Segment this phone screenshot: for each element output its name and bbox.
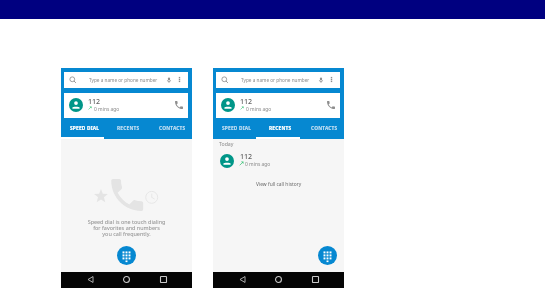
button[interactable]: 112	[64, 93, 188, 118]
staticText: 112	[88, 96, 101, 106]
button[interactable]: Home	[271, 273, 286, 288]
staticText: 0 mins ago	[94, 106, 120, 113]
button[interactable]: CONTACTS	[148, 118, 192, 139]
button[interactable]: Back	[83, 273, 98, 288]
button[interactable]: Recent apps	[156, 273, 171, 288]
button[interactable]: 112	[216, 93, 340, 118]
button[interactable]: Open dialpad	[117, 246, 136, 265]
staticText: Type a name or phone number	[241, 77, 310, 83]
staticText: Type a name or phone number	[89, 77, 158, 83]
staticText: 0 mins ago	[245, 161, 271, 168]
button[interactable]: RECENTS	[256, 118, 300, 139]
button[interactable]: Type a name or phone number	[216, 72, 340, 88]
staticText: Speed dial is one touch dialing for favo…	[61, 218, 192, 238]
staticText: 112	[240, 96, 253, 106]
staticText: Today	[219, 140, 234, 147]
staticText: RECENTS	[117, 125, 140, 132]
staticText: SPEED DIAL	[70, 125, 100, 132]
button[interactable]: Back	[235, 273, 250, 288]
staticText: View full call history	[256, 181, 302, 188]
button[interactable]: SPEED DIAL	[61, 118, 104, 139]
button[interactable]: RECENTS	[104, 118, 148, 139]
button[interactable]: Call	[323, 97, 339, 113]
staticText: 0 mins ago	[246, 106, 272, 113]
button[interactable]: View full call history	[213, 180, 344, 189]
button[interactable]: 112	[213, 151, 344, 171]
button[interactable]: Home	[119, 273, 134, 288]
button[interactable]: SPEED DIAL	[213, 118, 256, 139]
staticText: SPEED DIAL	[222, 125, 252, 132]
button[interactable]: Type a name or phone number	[64, 72, 188, 88]
button[interactable]: Open dialpad	[318, 246, 337, 265]
staticText: RECENTS	[269, 125, 292, 132]
staticText: CONTACTS	[159, 125, 186, 132]
staticText: 112	[240, 151, 253, 161]
staticText: CONTACTS	[311, 125, 338, 132]
button[interactable]: Recent apps	[308, 273, 323, 288]
button[interactable]: Call	[171, 97, 187, 113]
button[interactable]: CONTACTS	[300, 118, 344, 139]
